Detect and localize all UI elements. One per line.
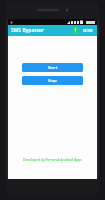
staticText: Developed by Personal Android Apps: [11, 157, 94, 162]
button[interactable]: Stop: [22, 76, 83, 85]
staticText: SMS Bypasser: [11, 27, 45, 34]
staticText: MORE: [83, 28, 94, 33]
staticText: Start: [48, 65, 58, 70]
button[interactable]: Start: [22, 63, 83, 72]
staticText: Stop: [48, 78, 57, 83]
button[interactable]: MORE: [82, 28, 95, 33]
button[interactable]: App status: [71, 26, 80, 35]
